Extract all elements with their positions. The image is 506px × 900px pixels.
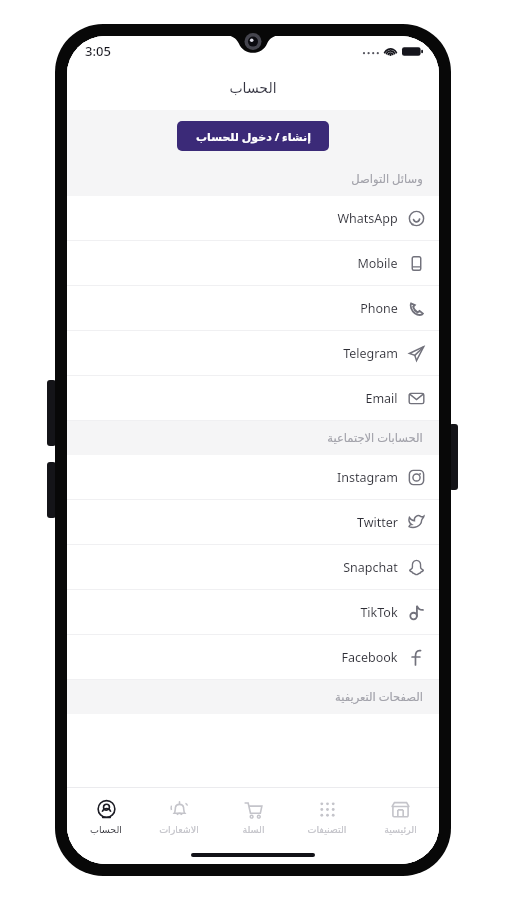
staticText: Facebook — [341, 649, 398, 666]
button[interactable]: Phone — [67, 286, 439, 331]
button[interactable]: Instagram — [67, 455, 439, 500]
staticText: الرئيسية — [384, 824, 417, 835]
button[interactable]: Email — [67, 376, 439, 421]
button[interactable]: Twitter — [67, 500, 439, 545]
staticText: الاشعارات — [159, 824, 199, 835]
staticText: إنشاء / دخول للحساب — [196, 129, 311, 144]
staticText: Twitter — [357, 514, 398, 531]
button[interactable]: WhatsApp — [67, 196, 439, 241]
button[interactable]: الحساب — [71, 788, 141, 846]
button[interactable]: Facebook — [67, 635, 439, 680]
button[interactable]: الرئيسية — [365, 788, 435, 846]
staticText: الحسابات الاجتماعية — [327, 430, 423, 446]
button[interactable]: Snapchat — [67, 545, 439, 590]
button[interactable]: Telegram — [67, 331, 439, 376]
staticText: TikTok — [360, 604, 398, 621]
staticText: WhatsApp — [337, 210, 398, 227]
staticText: Telegram — [343, 345, 398, 362]
staticText: الصفحات التعريفية — [335, 689, 423, 705]
staticText: Snapchat — [343, 559, 398, 576]
staticText: الحساب — [90, 824, 122, 835]
staticText: الحساب — [229, 80, 277, 96]
staticText: التصنيفات — [307, 824, 347, 835]
button[interactable]: إنشاء / دخول للحساب — [177, 121, 329, 151]
button[interactable]: Mobile — [67, 241, 439, 286]
staticText: Phone — [360, 300, 398, 317]
staticText: Mobile — [357, 255, 398, 272]
staticText: السلة — [242, 824, 265, 835]
staticText: Email — [365, 390, 398, 407]
staticText: Instagram — [337, 469, 398, 486]
staticText: 3:05 — [85, 42, 111, 60]
button[interactable]: التصنيفات — [292, 788, 362, 846]
staticText: وسائل التواصل — [351, 171, 423, 187]
button[interactable]: TikTok — [67, 590, 439, 635]
button[interactable]: الاشعارات — [144, 788, 214, 846]
button[interactable]: السلة — [218, 788, 288, 846]
